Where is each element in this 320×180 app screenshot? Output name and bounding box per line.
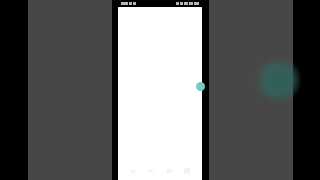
button[interactable]: Grid bbox=[180, 164, 194, 178]
button[interactable]: Floating action button bbox=[196, 82, 205, 91]
button[interactable]: Library bbox=[162, 164, 176, 178]
